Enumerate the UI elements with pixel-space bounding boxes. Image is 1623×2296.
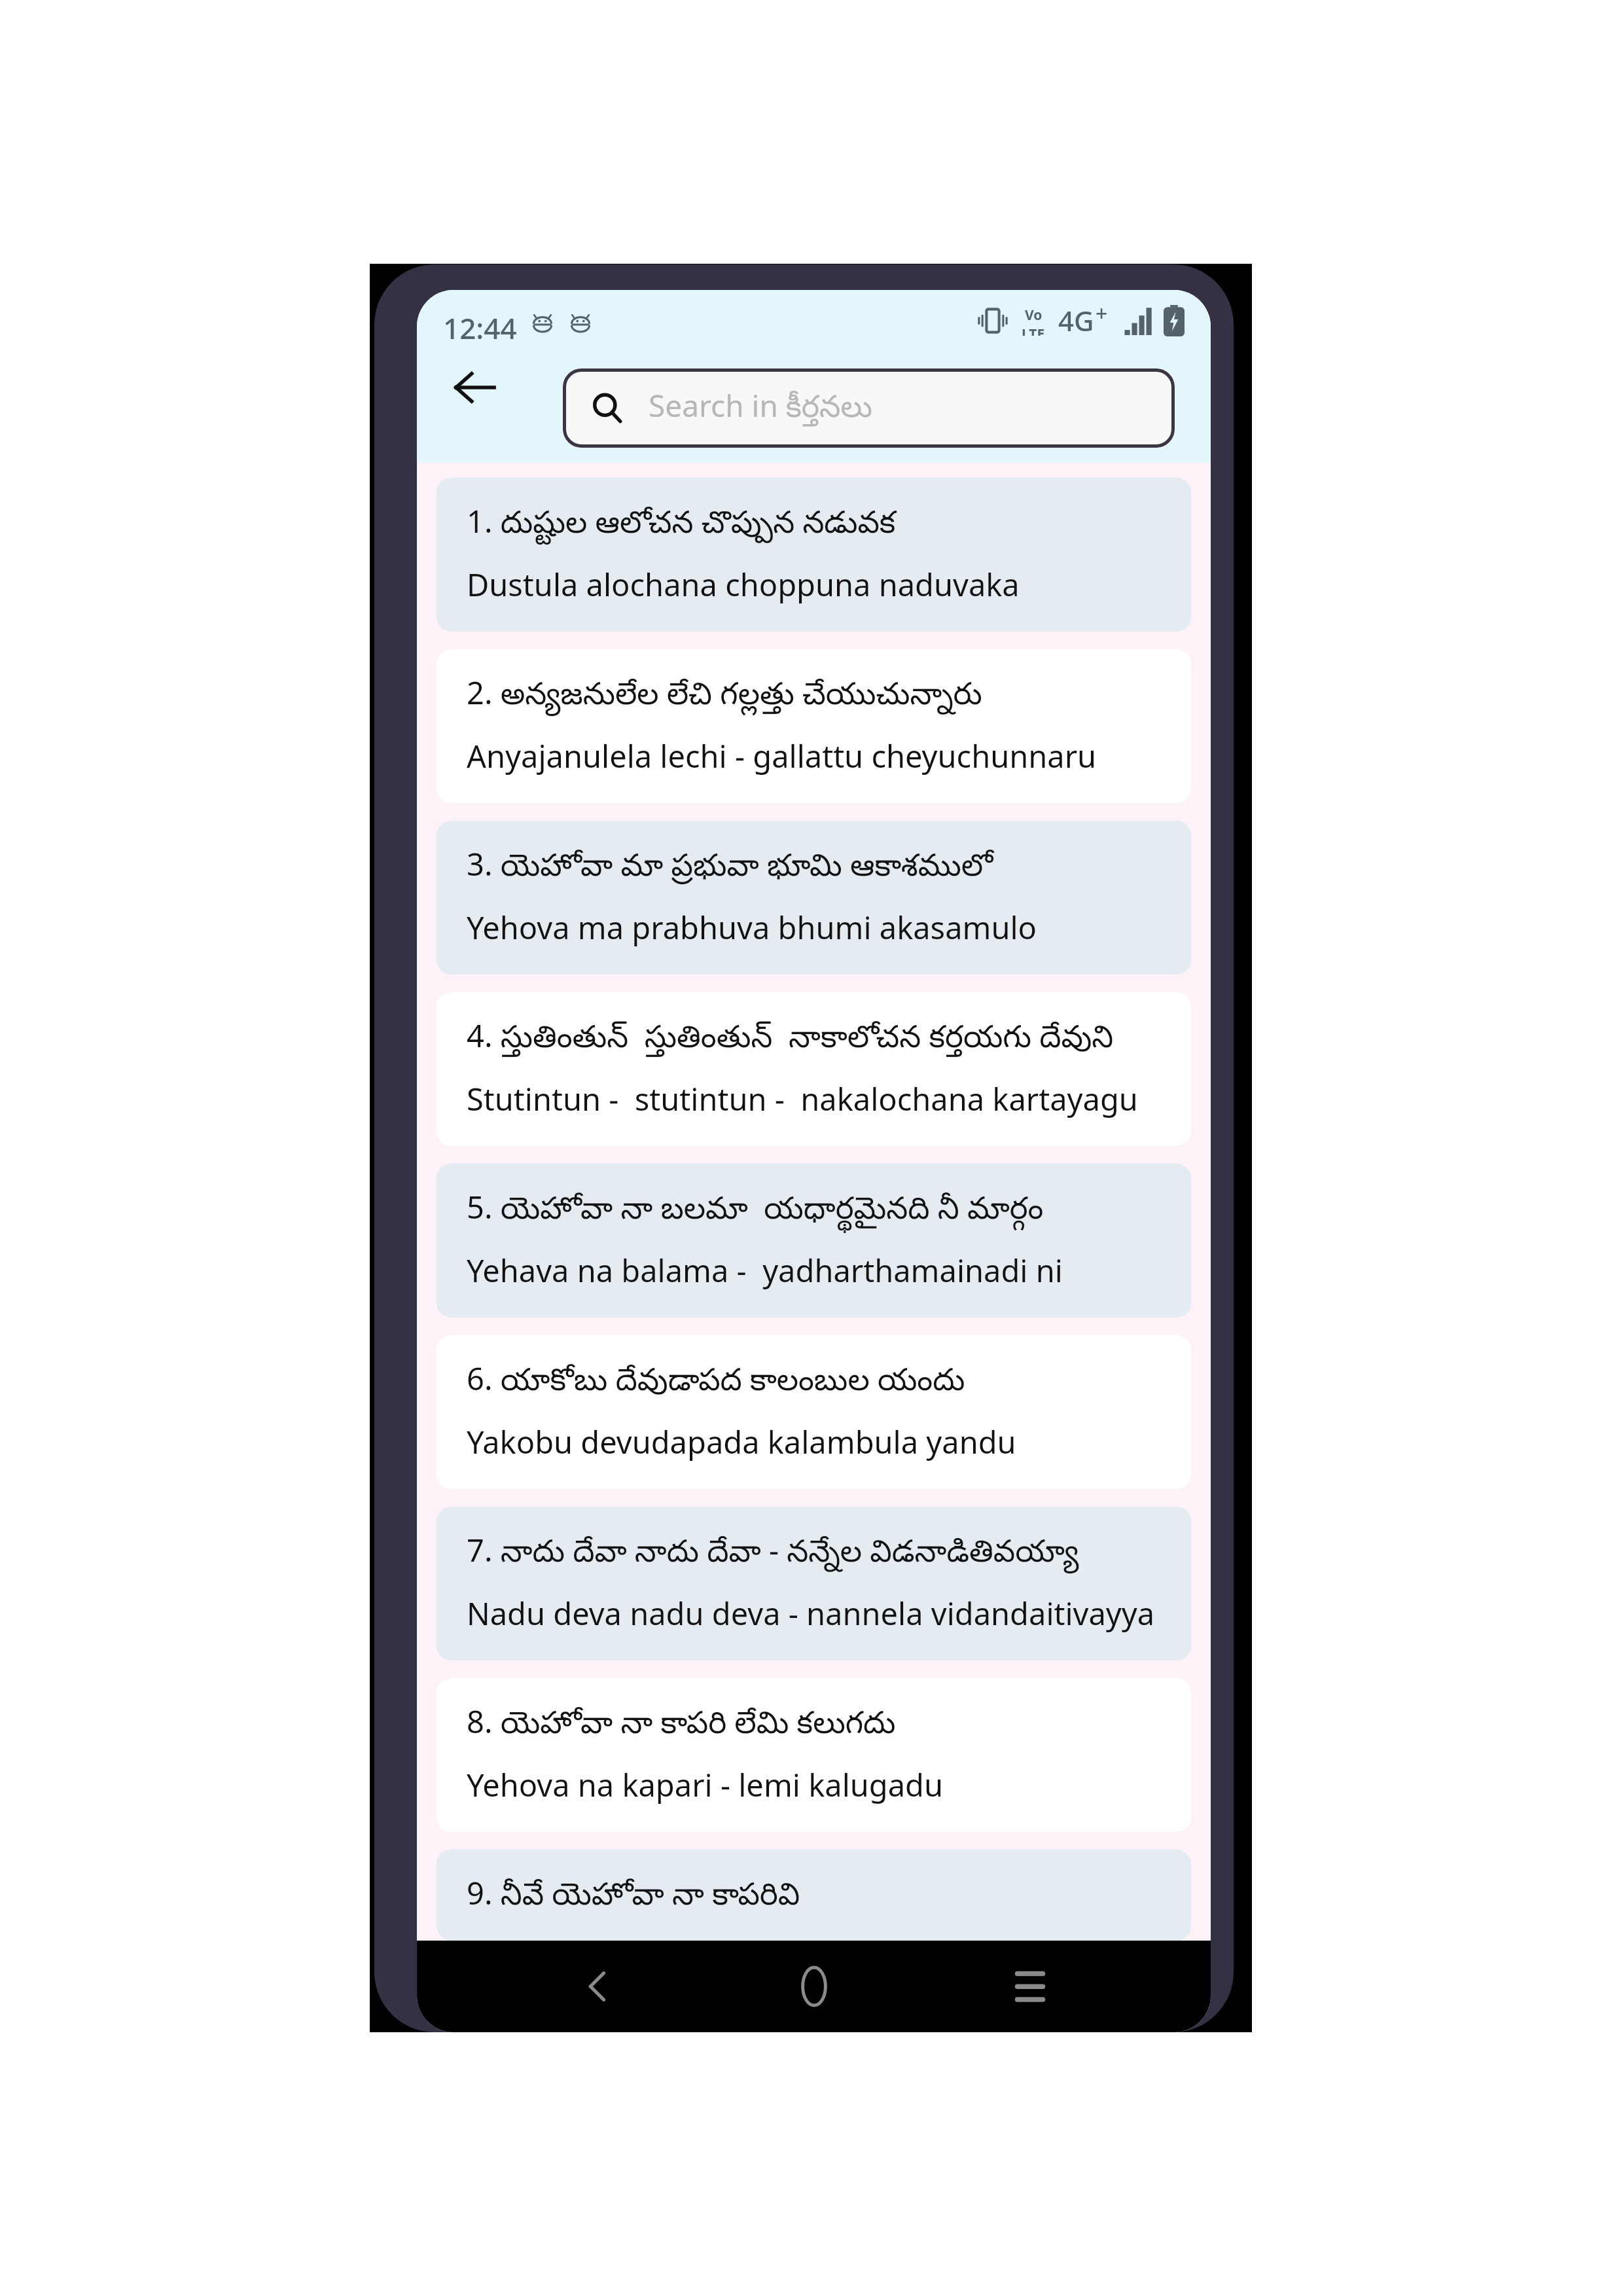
staticText: Stutintun - stutintun - nakalochana kart… [467,1078,1171,1120]
staticText: Search in కీర్తనలు [649,385,872,431]
staticText: LTE [1022,325,1045,336]
staticText: Nadu deva nadu deva - nannela vidandaiti… [467,1592,1155,1634]
button[interactable]: 5. యెహోవా నా బలమా యధార్థమైనది నీ మార్గం [437,1164,1191,1318]
button[interactable]: Search in కీర్తనలు [563,368,1175,448]
staticText: 1. దుష్టుల ఆలోచన చొప్పున నడువక [467,500,896,548]
staticText: Yehova ma prabhuva bhumi akasamulo [467,906,1037,948]
staticText: + [1096,299,1108,328]
staticText: 4G [1058,302,1094,339]
button[interactable]: Back [437,349,514,426]
staticText: 9. నీవే యెహోవా నా కాపరివి [467,1872,800,1914]
button[interactable]: 3. యెహోవా మా ప్రభువా భూమి ఆకాశములో [437,821,1191,975]
button[interactable]: Home [778,1950,850,2022]
staticText: 2. అన్యజనులేల లేచి గల్లత్తు చేయుచున్నారు [467,672,982,719]
staticText: 4. స్తుతింతున్ స్తుతింతున్ నాకాలోచన కర్త… [467,1014,1114,1062]
button[interactable]: 6. యాకోబు దేవుడాపద కాలంబుల యందు [437,1335,1191,1489]
button[interactable]: 9. నీవే యెహోవా నా కాపరివి [437,1850,1191,1941]
button[interactable]: 2. అన్యజనులేల లేచి గల్లత్తు చేయుచున్నారు [437,649,1191,803]
staticText: Anyajanulela lechi - gallattu cheyuchunn… [467,735,1097,777]
staticText: 5. యెహోవా నా బలమా యధార్థమైనది నీ మార్గం [467,1186,1044,1234]
button[interactable]: Recent apps [994,1950,1066,2022]
staticText: 8. యెహోవా నా కాపరి లేమి కలుగదు [467,1700,896,1748]
button[interactable]: Back [562,1950,633,2022]
staticText: Yehava na balama - yadharthamainadi ni m… [467,1249,1171,1291]
button[interactable]: 8. యెహోవా నా కాపరి లేమి కలుగదు [437,1678,1191,1832]
staticText: 12:44 [443,308,517,348]
staticText: 3. యెహోవా మా ప్రభువా భూమి ఆకాశములో [467,843,993,891]
button[interactable]: 4. స్తుతింతున్ స్తుతింతున్ నాకాలోచన కర్త… [437,992,1191,1146]
staticText: 6. యాకోబు దేవుడాపద కాలంబుల యందు [467,1357,965,1405]
button[interactable]: 1. దుష్టుల ఆలోచన చొప్పున నడువక [437,478,1191,632]
staticText: 7. నాదు దేవా నాదు దేవా - నన్నేల విడనాడిత… [467,1529,1079,1577]
staticText: Dustula alochana choppuna naduvaka [467,564,1020,605]
staticText: Yakobu devudapada kalambula yandu [467,1421,1016,1463]
button[interactable]: 7. నాదు దేవా నాదు దేవా - నన్నేల విడనాడిత… [437,1507,1191,1660]
staticText: Yehova na kapari - lemi kalugadu [467,1764,944,1806]
staticText: Vo [1025,306,1043,325]
